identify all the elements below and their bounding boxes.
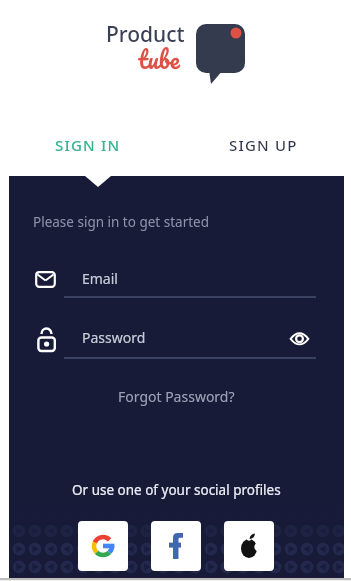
staticText: Or use one of your social profiles xyxy=(72,481,281,499)
button[interactable] xyxy=(224,521,274,571)
staticText: tube xyxy=(138,38,180,80)
staticText: SIGN IN xyxy=(55,135,121,155)
staticText: Forgot Password? xyxy=(118,387,235,406)
staticText: Product xyxy=(106,20,185,49)
button[interactable]: SIGN IN xyxy=(0,120,175,170)
button[interactable]: Email xyxy=(72,261,317,297)
staticText: SIGN UP xyxy=(229,135,298,155)
button[interactable]: SIGN UP xyxy=(175,120,351,170)
button[interactable] xyxy=(78,521,128,571)
button[interactable] xyxy=(283,325,317,355)
staticText: Password xyxy=(82,328,146,347)
staticText: Email xyxy=(82,269,118,288)
button[interactable]: Password xyxy=(72,320,277,356)
button[interactable] xyxy=(151,521,201,571)
staticText: Please sign in to get started xyxy=(33,213,209,231)
button[interactable]: Forgot Password? xyxy=(118,387,235,406)
